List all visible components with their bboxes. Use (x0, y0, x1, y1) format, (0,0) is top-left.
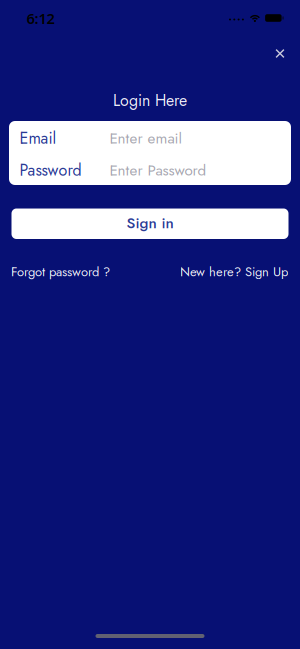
staticText: Password (19, 159, 81, 182)
button[interactable]: New here? Sign Up (180, 262, 288, 281)
button[interactable]: Sign in (11, 208, 288, 239)
button[interactable]: Close (269, 43, 290, 64)
button[interactable]: Email (9, 121, 291, 153)
button[interactable]: Password (9, 153, 291, 185)
staticText: 6:12 (26, 8, 54, 28)
staticText: Email (19, 127, 56, 150)
staticText: New here? Sign Up (180, 262, 288, 281)
staticText: Forgot password ? (11, 262, 110, 281)
staticText: Enter Password (109, 159, 206, 181)
staticText: Sign in (126, 212, 173, 234)
button[interactable]: Forgot password ? (11, 262, 110, 281)
staticText: Login Here (113, 89, 187, 112)
staticText: Enter email (109, 127, 181, 149)
